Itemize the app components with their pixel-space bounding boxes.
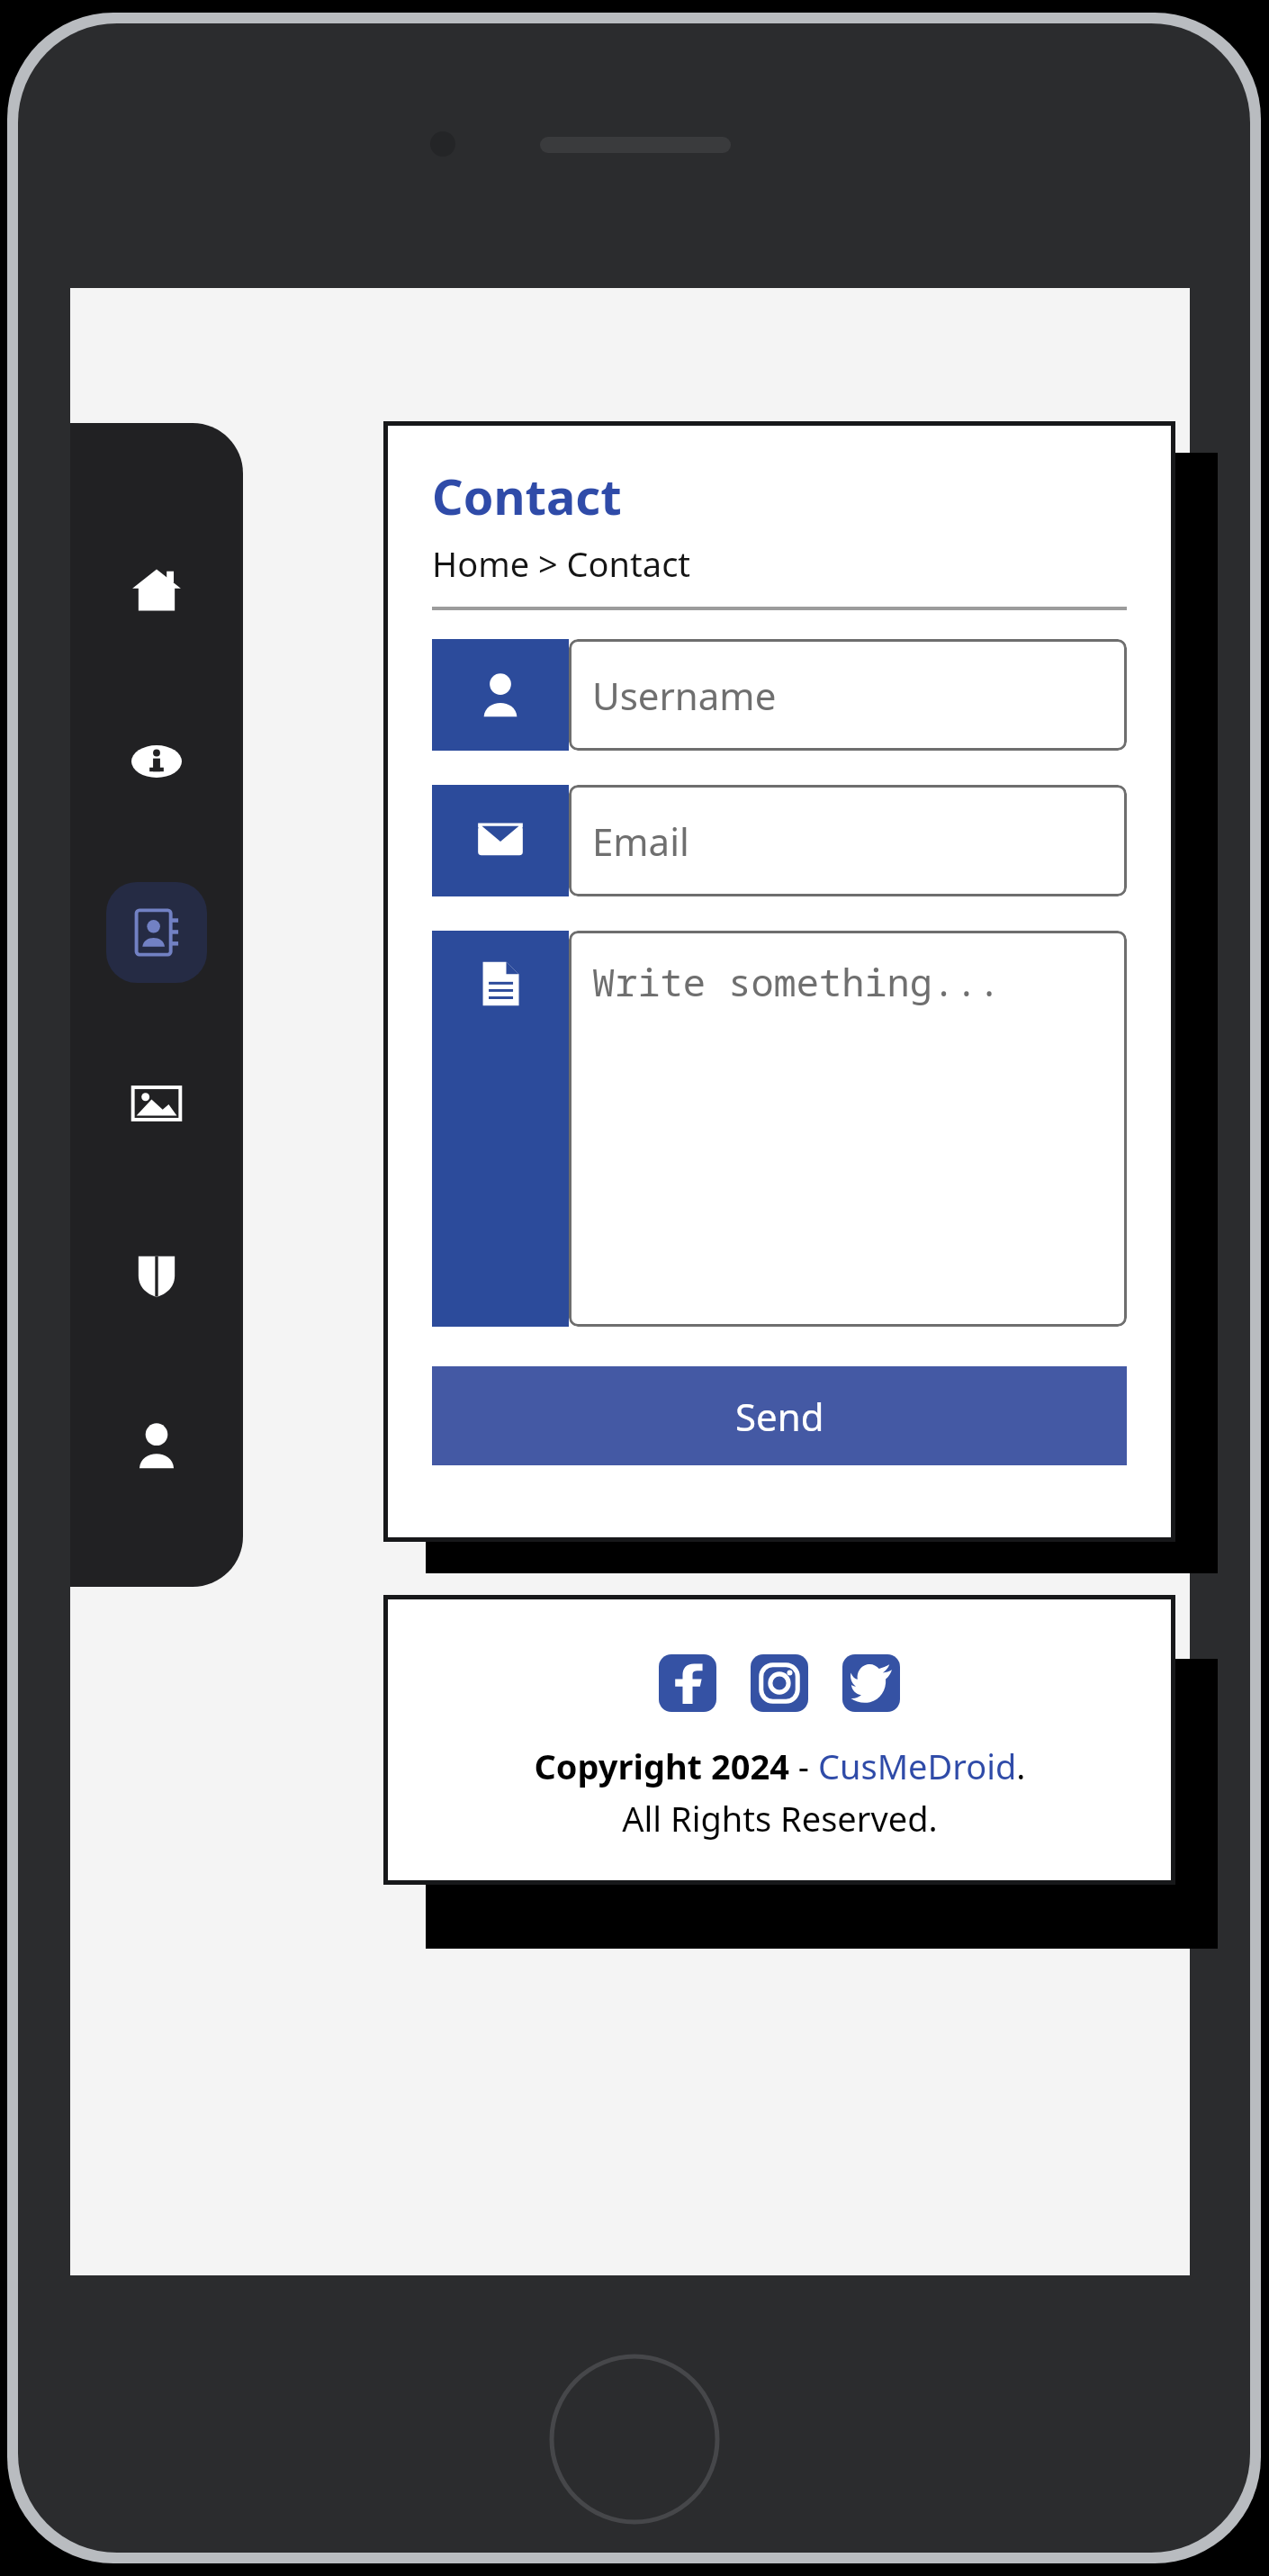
button[interactable]: Information — [106, 711, 207, 812]
button[interactable]: Email — [569, 785, 1127, 896]
button[interactable]: Write something... — [569, 931, 1127, 1327]
button[interactable]: Instagram — [751, 1654, 808, 1712]
button[interactable]: Twitter — [842, 1654, 900, 1712]
button[interactable]: Send — [432, 1366, 1127, 1465]
button[interactable]: Privacy — [106, 1224, 207, 1325]
button[interactable]: Contacts — [106, 882, 207, 983]
button[interactable]: Email — [432, 785, 569, 896]
staticText: Username — [592, 670, 777, 721]
staticText: Copyright 2024 - CusMeDroid. — [534, 1743, 1026, 1789]
staticText: Email — [592, 815, 689, 867]
button[interactable]: Gallery — [106, 1053, 207, 1154]
button[interactable]: Username — [432, 639, 569, 751]
staticText: Contact — [432, 463, 622, 529]
button[interactable]: Username — [569, 639, 1127, 751]
staticText: Write something... — [592, 956, 1001, 1007]
staticText: Send — [735, 1391, 824, 1442]
button[interactable]: Facebook — [659, 1654, 716, 1712]
staticText: Home > Contact — [432, 540, 691, 587]
button[interactable]: Home — [106, 540, 207, 641]
staticText: All Rights Reserved. — [622, 1795, 938, 1842]
button[interactable]: Profile — [106, 1395, 207, 1496]
button[interactable]: Message — [432, 931, 569, 1327]
